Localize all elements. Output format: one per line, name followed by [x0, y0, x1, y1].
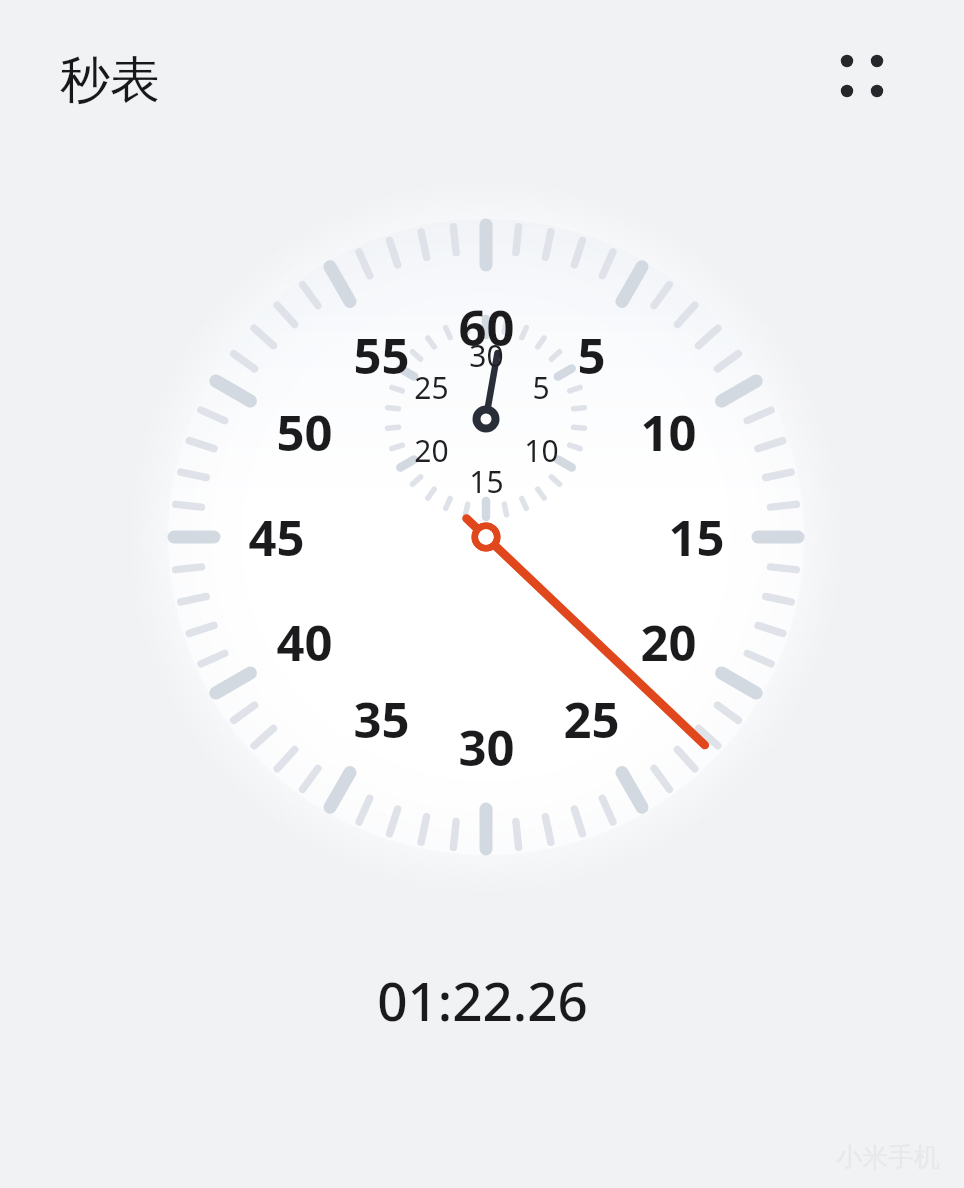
- staticText: 10: [640, 399, 697, 466]
- staticText: 秒表: [60, 49, 160, 112]
- staticText: 35: [353, 686, 410, 753]
- button[interactable]: More options: [820, 34, 904, 118]
- staticText: 55: [353, 322, 410, 389]
- staticText: 20: [640, 609, 697, 676]
- staticText: 10: [524, 430, 559, 471]
- button[interactable]: 01:22.26: [0, 960, 964, 1040]
- staticText: 40: [276, 609, 333, 676]
- staticText: 30: [469, 335, 504, 376]
- staticText: 15: [668, 504, 725, 571]
- staticText: 45: [248, 504, 305, 571]
- staticText: 5: [577, 322, 606, 389]
- staticText: 25: [414, 367, 449, 408]
- staticText: 60: [458, 294, 515, 361]
- button[interactable]: 秒表: [60, 49, 160, 112]
- staticText: 30: [458, 714, 515, 781]
- staticText: 小米手机: [836, 1141, 940, 1174]
- staticText: 25: [563, 686, 620, 753]
- staticText: 20: [414, 430, 449, 471]
- staticText: 50: [276, 399, 333, 466]
- staticText: 5: [532, 367, 550, 408]
- staticText: 01:22.26: [377, 964, 588, 1036]
- staticText: 15: [469, 461, 504, 502]
- button[interactable]: Stopwatch dial: [0, 0, 964, 1188]
